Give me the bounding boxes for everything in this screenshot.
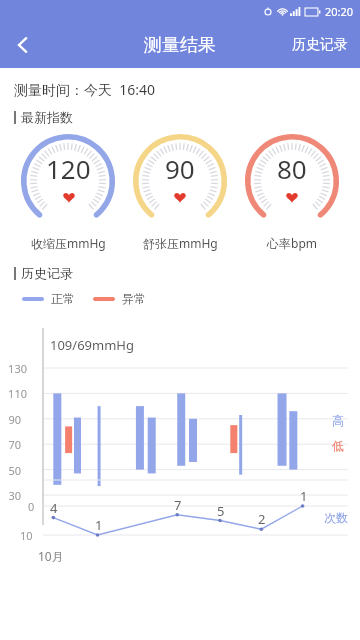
- staticText: 130: [8, 361, 27, 376]
- staticText: 120: [46, 151, 91, 186]
- button[interactable]: Back: [0, 22, 46, 68]
- staticText: 舒张压mmHg: [143, 235, 218, 251]
- staticText: 70: [8, 437, 21, 452]
- staticText: 高: [332, 413, 344, 428]
- staticText: 最新指数: [21, 109, 73, 125]
- staticText: 低: [332, 438, 344, 453]
- staticText: 次数: [324, 510, 348, 525]
- staticText: 5: [217, 502, 225, 520]
- staticText: 7: [174, 496, 182, 514]
- staticText: 异常: [122, 291, 146, 306]
- staticText: 10月: [38, 548, 64, 564]
- button[interactable]: 历史记录: [280, 22, 360, 68]
- staticText: 心率bpm: [267, 235, 317, 251]
- staticText: 20:20: [325, 4, 354, 19]
- staticText: 50: [8, 463, 21, 478]
- staticText: 历史记录: [292, 36, 348, 54]
- staticText: 0: [28, 499, 35, 514]
- staticText: 1: [95, 516, 103, 534]
- staticText: 80: [277, 151, 307, 186]
- staticText: 90: [165, 151, 195, 186]
- staticText: 10: [20, 528, 33, 543]
- staticText: 测量结果: [144, 34, 216, 57]
- staticText: 正常: [51, 291, 75, 306]
- staticText: 109/69mmHg: [50, 336, 134, 354]
- staticText: 测量时间：今天 16:40: [14, 80, 156, 99]
- staticText: 2: [258, 510, 266, 528]
- staticText: 30: [8, 488, 21, 503]
- staticText: 历史记录: [21, 265, 73, 281]
- staticText: 1: [300, 487, 308, 505]
- staticText: 90: [8, 412, 21, 427]
- staticText: 4: [50, 499, 58, 517]
- staticText: 110: [8, 386, 27, 401]
- staticText: 收缩压mmHg: [31, 235, 106, 251]
